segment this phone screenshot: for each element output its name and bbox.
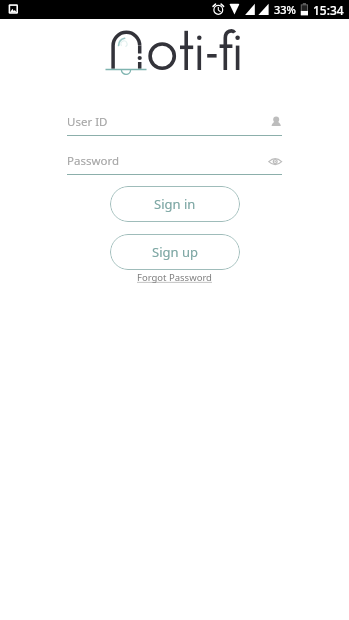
button[interactable]: Show password — [267, 154, 282, 169]
staticText: User ID — [67, 114, 108, 130]
staticText: Forgot Password — [137, 271, 212, 284]
staticText: 33% — [274, 2, 296, 17]
button[interactable]: Sign in — [110, 186, 240, 222]
staticText: Password — [67, 153, 120, 169]
button[interactable]: Forgot Password — [137, 271, 212, 284]
button[interactable]: Sign up — [110, 234, 240, 270]
staticText: Sign in — [154, 195, 196, 213]
staticText: 15:34 — [313, 2, 344, 18]
staticText: Sign up — [152, 243, 198, 261]
button[interactable]: Account — [267, 115, 282, 130]
